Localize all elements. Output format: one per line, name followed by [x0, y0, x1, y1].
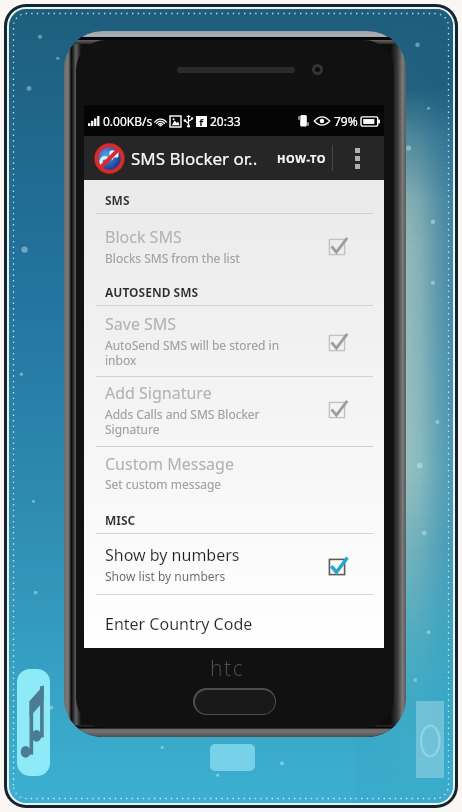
staticText: 20:33	[210, 113, 241, 129]
button[interactable]: Music	[17, 669, 50, 776]
staticText: AUTOSEND SMS	[105, 284, 199, 300]
staticText: Show by numbers	[105, 544, 240, 566]
button[interactable]: Enter Country Code	[84, 600, 384, 646]
button[interactable]: More options	[342, 136, 372, 180]
staticText: Set custom message	[105, 476, 222, 492]
staticText: MISC	[105, 512, 136, 528]
button[interactable]: Block SMS	[84, 220, 384, 266]
staticText: Adds Calls and SMS Blocker Signature	[105, 406, 289, 437]
button[interactable]: Apps	[210, 744, 255, 771]
staticText: SMS Blocker or..	[131, 147, 258, 170]
staticText: Show list by numbers	[105, 568, 226, 584]
staticText: Enter Country Code	[105, 613, 253, 635]
staticText: 0.00KB/s	[103, 113, 153, 129]
staticText: f	[199, 115, 204, 126]
button[interactable]: HOW-TO	[272, 136, 332, 180]
staticText: HOW-TO	[277, 151, 327, 166]
button[interactable]: Show by numbers	[84, 540, 384, 594]
staticText: AutoSend SMS will be stored in inbox	[105, 337, 289, 368]
button[interactable]: Custom Message	[84, 452, 384, 500]
staticText: SMS	[105, 192, 130, 208]
staticText: 79%	[334, 113, 358, 129]
button[interactable]: SMS Blocker or..	[84, 136, 262, 180]
staticText: Add Signature	[105, 382, 212, 404]
staticText: Save SMS	[105, 313, 177, 335]
button[interactable]: Save SMS	[84, 312, 384, 376]
button[interactable]: Camera	[416, 701, 444, 778]
staticText: Blocks SMS from the list	[105, 250, 240, 266]
staticText: htc	[210, 654, 245, 683]
button[interactable]: Add Signature	[84, 382, 384, 446]
staticText: Block SMS	[105, 226, 182, 248]
staticText: Custom Message	[105, 453, 234, 475]
